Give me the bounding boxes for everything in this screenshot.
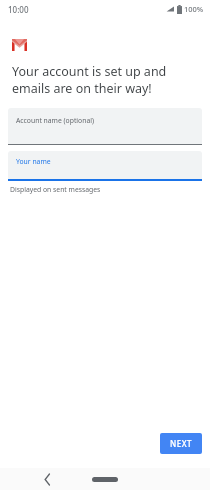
button[interactable]: NEXT <box>160 433 202 454</box>
staticText: 10:00 <box>8 4 29 15</box>
button[interactable]: Your name <box>8 151 202 181</box>
staticText: NEXT <box>170 438 193 449</box>
button[interactable]: Back <box>38 470 56 488</box>
button[interactable]: Home <box>92 477 118 482</box>
staticText: Account name (optional) <box>16 116 95 125</box>
staticText: Your name <box>16 157 51 166</box>
staticText: Displayed on sent messages <box>10 185 101 194</box>
staticText: 100% <box>184 4 204 14</box>
staticText: Your account is set up and emails are on… <box>12 63 194 97</box>
button[interactable]: Account name (optional) <box>8 108 202 145</box>
